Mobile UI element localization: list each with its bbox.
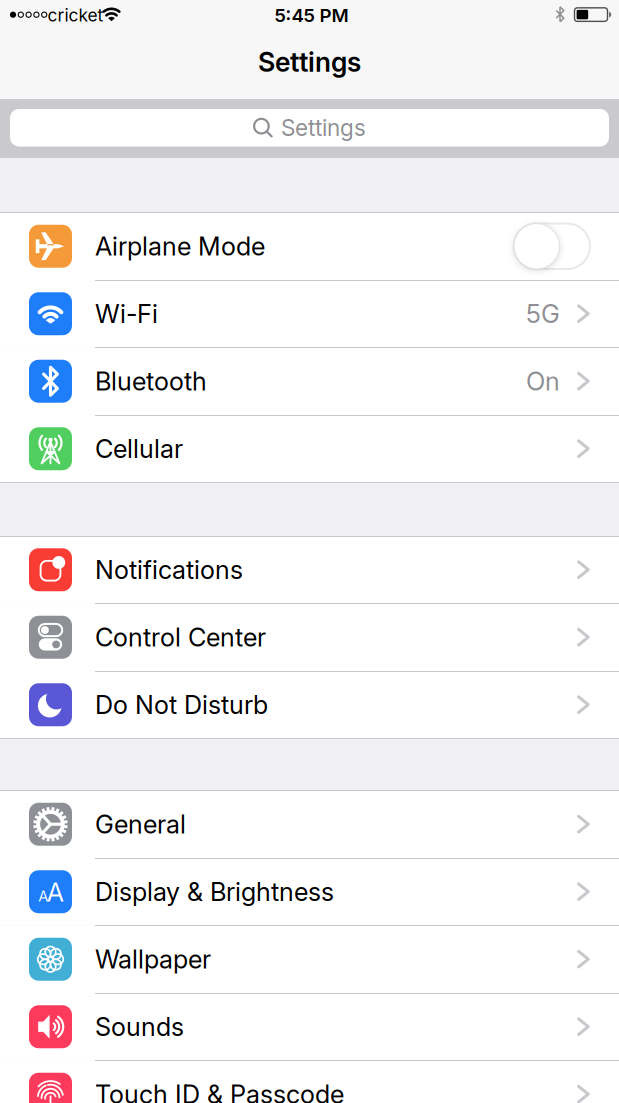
staticText: On <box>526 366 560 396</box>
staticText: Notifications <box>95 555 243 585</box>
button[interactable]: Airplane Mode <box>0 212 619 280</box>
button[interactable]: Do Not Disturb <box>0 671 619 738</box>
staticText: Settings <box>258 46 361 78</box>
staticText: Airplane Mode <box>95 231 265 261</box>
button[interactable]: Cellular <box>0 415 619 482</box>
button[interactable]: A <box>0 858 619 925</box>
staticText: Do Not Disturb <box>95 690 268 720</box>
button[interactable]: Touch ID & Passcode <box>0 1060 619 1103</box>
staticText: 5:45 PM <box>274 4 348 26</box>
staticText: Wi-Fi <box>95 299 158 329</box>
staticText: Wallpaper <box>95 944 211 974</box>
staticText: Bluetooth <box>95 366 207 396</box>
button[interactable]: General <box>0 790 619 858</box>
staticText: Control Center <box>95 622 266 652</box>
button[interactable]: Wi-Fi <box>0 280 619 347</box>
staticText: 5G <box>526 299 560 329</box>
staticText: cricket <box>47 5 103 25</box>
staticText: Display & Brightness <box>95 877 334 907</box>
button[interactable]: Search <box>10 109 609 146</box>
button[interactable]: Sounds <box>0 993 619 1060</box>
button[interactable]: Wallpaper <box>0 925 619 993</box>
staticText: Settings <box>281 114 366 141</box>
staticText: A <box>47 877 64 907</box>
staticText: Sounds <box>95 1012 184 1042</box>
staticText: Cellular <box>95 434 183 464</box>
staticText: Touch ID & Passcode <box>95 1079 344 1103</box>
button[interactable]: Control Center <box>0 603 619 671</box>
staticText: General <box>95 809 186 839</box>
staticText: A <box>38 887 48 905</box>
button[interactable]: Bluetooth <box>0 347 619 415</box>
button[interactable]: Notifications <box>0 536 619 603</box>
